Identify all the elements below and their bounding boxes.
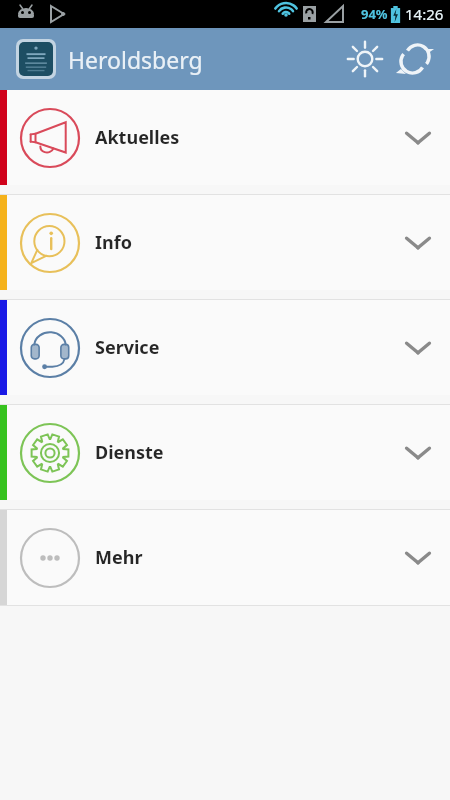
other: Aufklappen xyxy=(392,322,444,374)
button[interactable]: Mehr xyxy=(0,510,450,605)
other: Aufklappen xyxy=(392,112,444,164)
button[interactable]: Helligkeit xyxy=(340,34,390,84)
staticText: Dienste xyxy=(95,440,164,465)
staticText: Info xyxy=(95,230,132,255)
staticText: Mehr xyxy=(95,545,143,570)
staticText: 14:26 xyxy=(405,4,444,24)
button[interactable]: Info xyxy=(0,195,450,290)
staticText: Aktuelles xyxy=(95,125,180,150)
staticText: Heroldsberg xyxy=(68,44,203,75)
staticText: 94% xyxy=(361,5,388,23)
other: Aufklappen xyxy=(392,427,444,479)
other: Aufklappen xyxy=(392,532,444,584)
button[interactable]: Service xyxy=(0,300,450,395)
button[interactable]: Aktuelles xyxy=(0,90,450,185)
other: Aufklappen xyxy=(392,217,444,269)
button[interactable]: Aktualisieren xyxy=(390,34,440,84)
staticText: Service xyxy=(95,335,160,360)
button[interactable]: Dienste xyxy=(0,405,450,500)
